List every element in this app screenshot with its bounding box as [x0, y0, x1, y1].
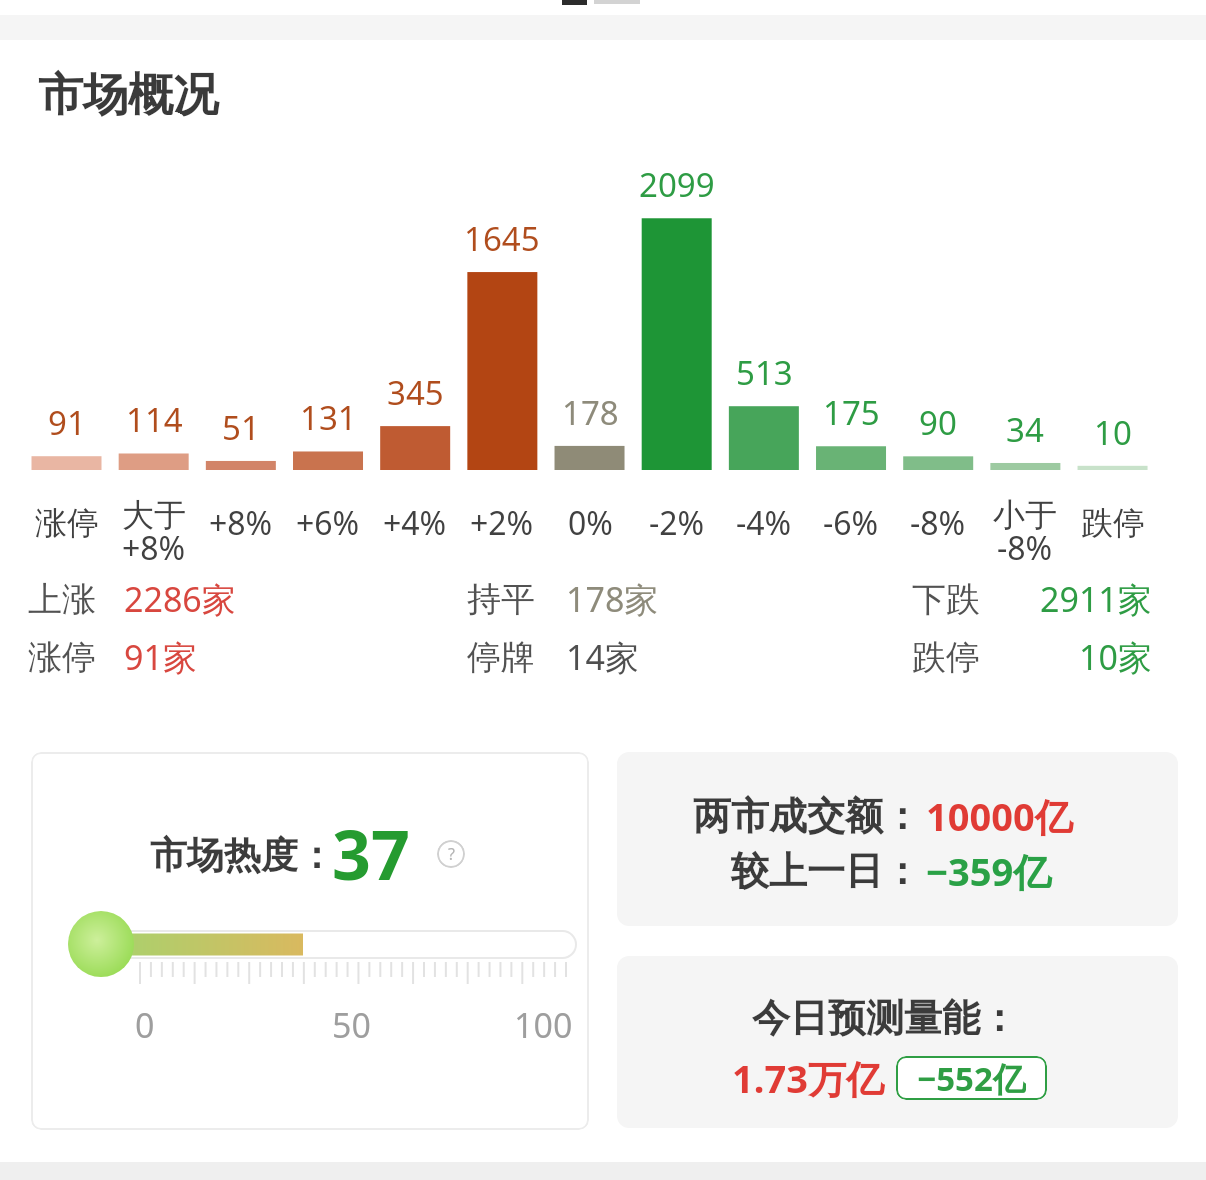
staticText: 涨停	[28, 636, 96, 679]
staticText: 停牌	[467, 636, 535, 679]
staticText: 1645	[464, 216, 540, 261]
button[interactable]	[617, 752, 1178, 926]
staticText: 两市成交额：	[693, 792, 921, 840]
staticText: 跌停	[912, 636, 980, 679]
staticText: 较上一日：	[731, 847, 921, 895]
staticText: 50	[332, 1002, 371, 1048]
staticText: 178家	[566, 576, 659, 622]
staticText: 100	[514, 1002, 573, 1048]
staticText: 涨停	[35, 503, 99, 543]
staticText: +2%	[470, 501, 534, 545]
staticText: +8%	[122, 526, 186, 570]
staticText: ?	[448, 843, 455, 865]
staticText: 90	[919, 400, 957, 445]
staticText: 市场热度：	[150, 832, 335, 879]
staticText: −359亿	[926, 845, 1052, 897]
staticText: 345	[387, 370, 444, 415]
staticText: +8%	[209, 501, 273, 545]
staticText: 10000亿	[926, 790, 1073, 842]
staticText: 1.73万亿	[732, 1052, 884, 1104]
staticText: 0%	[568, 501, 613, 545]
staticText: 91	[48, 400, 86, 445]
staticText: 下跌	[912, 578, 980, 621]
staticText: -8%	[910, 501, 966, 545]
staticText: +6%	[296, 501, 360, 545]
staticText: 2911家	[1040, 576, 1152, 622]
staticText: 持平	[467, 578, 535, 621]
staticText: 10	[1094, 410, 1132, 455]
staticText: 10家	[1079, 634, 1152, 680]
staticText: -8%	[997, 526, 1053, 570]
button[interactable]	[31, 752, 589, 1130]
staticText: 今日预测量能：	[752, 994, 1018, 1042]
staticText: 大于	[122, 495, 186, 535]
button[interactable]: −552亿	[896, 1056, 1047, 1100]
staticText: 34	[1006, 407, 1044, 452]
staticText: 上涨	[28, 578, 96, 621]
staticText: −552亿	[917, 1056, 1026, 1100]
staticText: +4%	[383, 501, 447, 545]
staticText: 91家	[124, 634, 197, 680]
staticText: 131	[300, 395, 357, 440]
staticText: -6%	[823, 501, 879, 545]
staticText: 178	[562, 390, 619, 435]
staticText: -2%	[649, 501, 705, 545]
staticText: 114	[126, 397, 183, 442]
staticText: 2286家	[124, 576, 236, 622]
staticText: 51	[222, 405, 260, 450]
staticText: 513	[736, 350, 793, 395]
staticText: 跌停	[1081, 503, 1145, 543]
staticText: 小于	[993, 495, 1057, 535]
staticText: 2099	[639, 162, 715, 207]
staticText: 37	[332, 807, 410, 897]
staticText: 0	[135, 1002, 155, 1048]
button[interactable]	[617, 956, 1178, 1128]
staticText: 175	[823, 390, 880, 435]
staticText: -4%	[736, 501, 792, 545]
staticText: 市场概况	[38, 67, 218, 124]
button[interactable]: ?	[437, 840, 465, 868]
staticText: 14家	[566, 634, 639, 680]
